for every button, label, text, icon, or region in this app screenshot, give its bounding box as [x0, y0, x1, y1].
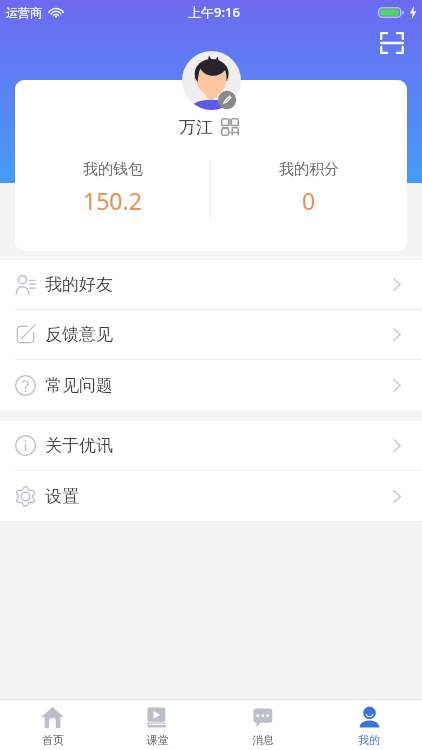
staticText: 我的好友	[45, 274, 113, 295]
button[interactable]: Avatar	[182, 51, 241, 110]
staticText: 我的	[358, 733, 380, 747]
button[interactable]: QR code	[221, 118, 239, 136]
staticText: 常见问题	[45, 375, 113, 396]
button[interactable]: 我的钱包	[15, 160, 210, 216]
staticText: 反馈意见	[45, 324, 113, 345]
staticText: 消息	[252, 733, 274, 747]
button[interactable]: 消息	[210, 700, 316, 750]
staticText: 运营商	[6, 5, 42, 20]
button[interactable]: 课堂	[105, 700, 210, 750]
button[interactable]: 万江	[15, 116, 405, 138]
button[interactable]: Scan	[377, 28, 407, 56]
button[interactable]: 关于优讯	[0, 421, 422, 470]
button[interactable]: 常见问题	[0, 360, 422, 410]
staticText: 上午9:16	[188, 3, 240, 21]
button[interactable]: 我的好友	[0, 260, 422, 309]
staticText: 关于优讯	[45, 435, 113, 456]
button[interactable]: 我的积分	[211, 160, 407, 216]
button[interactable]: 首页	[0, 700, 105, 750]
staticText: 万江	[179, 117, 213, 138]
staticText: 150.2	[83, 185, 142, 216]
staticText: 首页	[42, 733, 64, 747]
button[interactable]: 设置	[0, 471, 422, 521]
staticText: 我的钱包	[83, 160, 143, 179]
button[interactable]: 反馈意见	[0, 310, 422, 359]
button[interactable]: 我的	[316, 700, 422, 750]
staticText: 我的积分	[279, 160, 339, 179]
staticText: 课堂	[147, 733, 169, 747]
staticText: 0	[302, 185, 316, 216]
staticText: 设置	[45, 486, 79, 507]
